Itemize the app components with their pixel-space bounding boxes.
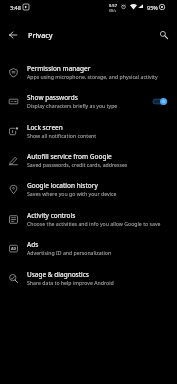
staticText: Usage & diagnostics [27, 270, 89, 279]
button[interactable]: Back [0, 22, 26, 48]
staticText: Saved passwords, credit cards, addresses [27, 161, 128, 168]
staticText: 3:48 [10, 4, 21, 11]
staticText: Show passwords [27, 93, 78, 102]
staticText: Show all notification content [27, 132, 97, 139]
staticText: Apps using microphone, storage, and phys… [27, 73, 158, 80]
staticText: Choose the activities and info you allow… [27, 220, 161, 227]
button[interactable]: Activity controls [0, 204, 177, 234]
staticText: Lock screen [27, 123, 63, 132]
staticText: AD [11, 246, 17, 251]
button[interactable]: Lock screen [0, 116, 177, 146]
button[interactable]: Permission manager [0, 57, 177, 87]
staticText: Ads [27, 240, 39, 249]
staticText: Autofill service from Google [27, 152, 112, 161]
staticText: Display characters briefly as you type [27, 102, 118, 109]
staticText: Activity controls [27, 211, 76, 220]
button[interactable]: Google location history [0, 174, 177, 204]
button[interactable]: Search [151, 22, 177, 48]
staticText: Share data to help improve Android [27, 279, 114, 286]
staticText: KB/s [109, 8, 117, 13]
staticText: Privacy [28, 30, 53, 40]
button[interactable]: Usage & diagnostics [0, 263, 177, 293]
staticText: Saves where you go with your device [27, 190, 117, 197]
button[interactable]: Autofill service from Google [0, 145, 177, 175]
staticText: 0.57 [109, 3, 117, 8]
button[interactable]: Show passwords [0, 86, 177, 116]
button[interactable]: AD [0, 233, 177, 263]
staticText: Permission manager [27, 64, 91, 73]
staticText: 95% [147, 4, 158, 11]
staticText: Advertising ID and personalization [27, 249, 112, 256]
staticText: Google location history [27, 181, 98, 190]
